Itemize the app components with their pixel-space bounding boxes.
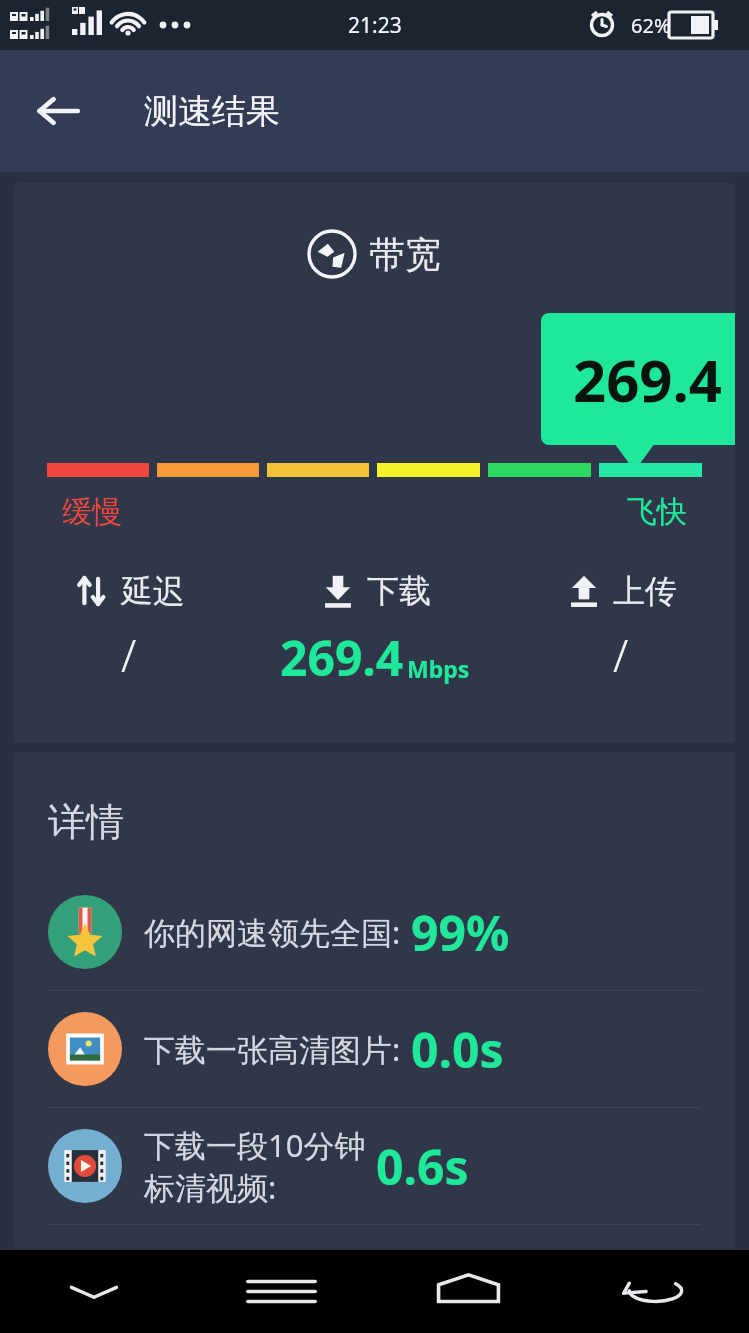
staticText: 269.4 (573, 340, 723, 419)
button[interactable]: 带宽 (14, 183, 735, 743)
button[interactable]: 下载 (243, 571, 506, 690)
button[interactable]: Back (562, 1250, 749, 1333)
button[interactable]: Home (375, 1250, 562, 1333)
staticText: / (613, 625, 629, 685)
staticText: 99% (411, 900, 510, 965)
staticText: 下载一张高清图片: (144, 1028, 401, 1070)
staticText: 详情 (48, 798, 124, 846)
staticText: 缓慢 (62, 493, 122, 531)
staticText: 下载 (367, 571, 431, 611)
button[interactable]: 延迟 (14, 571, 243, 685)
staticText: 269.4 (280, 625, 404, 690)
staticText: 你的网速领先全国: (144, 911, 401, 953)
staticText: 延迟 (121, 571, 185, 611)
staticText: 上传 (613, 571, 677, 611)
staticText: 62% (631, 12, 671, 39)
staticText: 下载一段10分钟 (144, 1124, 366, 1166)
staticText: 21:23 (348, 11, 402, 40)
button[interactable]: 下载一段10分钟 (48, 1108, 701, 1224)
staticText: 带宽 (369, 232, 441, 277)
button[interactable]: 下载一张高清图片: (48, 991, 701, 1107)
staticText: 0.0s (411, 1017, 504, 1082)
staticText: Mbps (407, 653, 470, 684)
staticText: / (121, 625, 137, 685)
staticText: 飞快 (627, 493, 687, 531)
button[interactable]: 详情 (14, 752, 735, 1249)
button[interactable]: Collapse (0, 1250, 188, 1333)
button[interactable]: Back (22, 75, 94, 147)
staticText: 测速结果 (144, 90, 280, 133)
button[interactable]: 你的网速领先全国: (48, 874, 701, 990)
button[interactable]: Menu (188, 1250, 375, 1333)
staticText: 0.6s (376, 1134, 469, 1199)
staticText: 标清视频: (144, 1166, 277, 1208)
button[interactable]: 上传 (506, 571, 735, 685)
